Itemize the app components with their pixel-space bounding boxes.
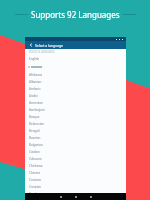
staticText: Azerbaijani	[29, 108, 45, 112]
staticText: Czech	[29, 192, 38, 196]
staticText: Afrikaans	[29, 73, 43, 77]
staticText: Croatian	[29, 185, 41, 189]
button[interactable]: Bosnian	[25, 134, 126, 141]
button[interactable]: Select a language	[35, 42, 64, 48]
staticText: Albanian	[29, 80, 42, 84]
button[interactable]: Amharic	[25, 85, 126, 92]
button[interactable]: Croatian	[25, 183, 126, 190]
staticText: Armenian	[29, 101, 43, 105]
button[interactable]: Back	[57, 193, 65, 200]
staticText: Chinese	[29, 171, 41, 175]
button[interactable]: Czech	[25, 190, 126, 197]
staticText: Bosnian	[29, 136, 41, 140]
button[interactable]: Back	[29, 43, 33, 47]
staticText: Corsican	[29, 178, 42, 182]
button[interactable]: Afrikaans	[25, 71, 126, 78]
staticText: Belarusian	[29, 122, 44, 126]
staticText: English	[29, 57, 40, 61]
button[interactable]: Home	[72, 193, 80, 200]
button[interactable]: Cebuano	[25, 155, 126, 162]
button[interactable]: Albanian	[25, 78, 126, 85]
staticText: SELECT A LANGUAGE	[29, 50, 55, 54]
button[interactable]: Belarusian	[25, 120, 126, 127]
button[interactable]: Basque	[25, 113, 126, 120]
button[interactable]: Chinese	[25, 169, 126, 176]
button[interactable]: English	[25, 55, 126, 63]
staticText: Supports 92 Languages	[31, 9, 120, 20]
staticText: Bengali	[29, 129, 40, 133]
button[interactable]: Chichewa	[25, 162, 126, 169]
staticText: Cebuano	[29, 157, 42, 161]
button[interactable]: Catalan	[25, 148, 126, 155]
staticText: Bulgarian	[29, 143, 43, 147]
staticText: Amharic	[29, 87, 41, 91]
button[interactable]: Bulgarian	[25, 141, 126, 148]
button[interactable]: Arabic	[25, 92, 126, 99]
button[interactable]: Bengali	[25, 127, 126, 134]
button[interactable]: Recent apps	[87, 193, 95, 200]
button[interactable]: Azerbaijani	[25, 106, 126, 113]
staticText: Select a language	[35, 43, 64, 48]
staticText: Catalan	[29, 150, 40, 154]
button[interactable]: Armenian	[25, 99, 126, 106]
button[interactable]: Corsican	[25, 176, 126, 183]
staticText: Basque	[29, 115, 40, 119]
button[interactable]: Danish	[25, 197, 126, 200]
staticText: Chichewa	[29, 164, 43, 168]
staticText: Arabic	[29, 94, 38, 98]
